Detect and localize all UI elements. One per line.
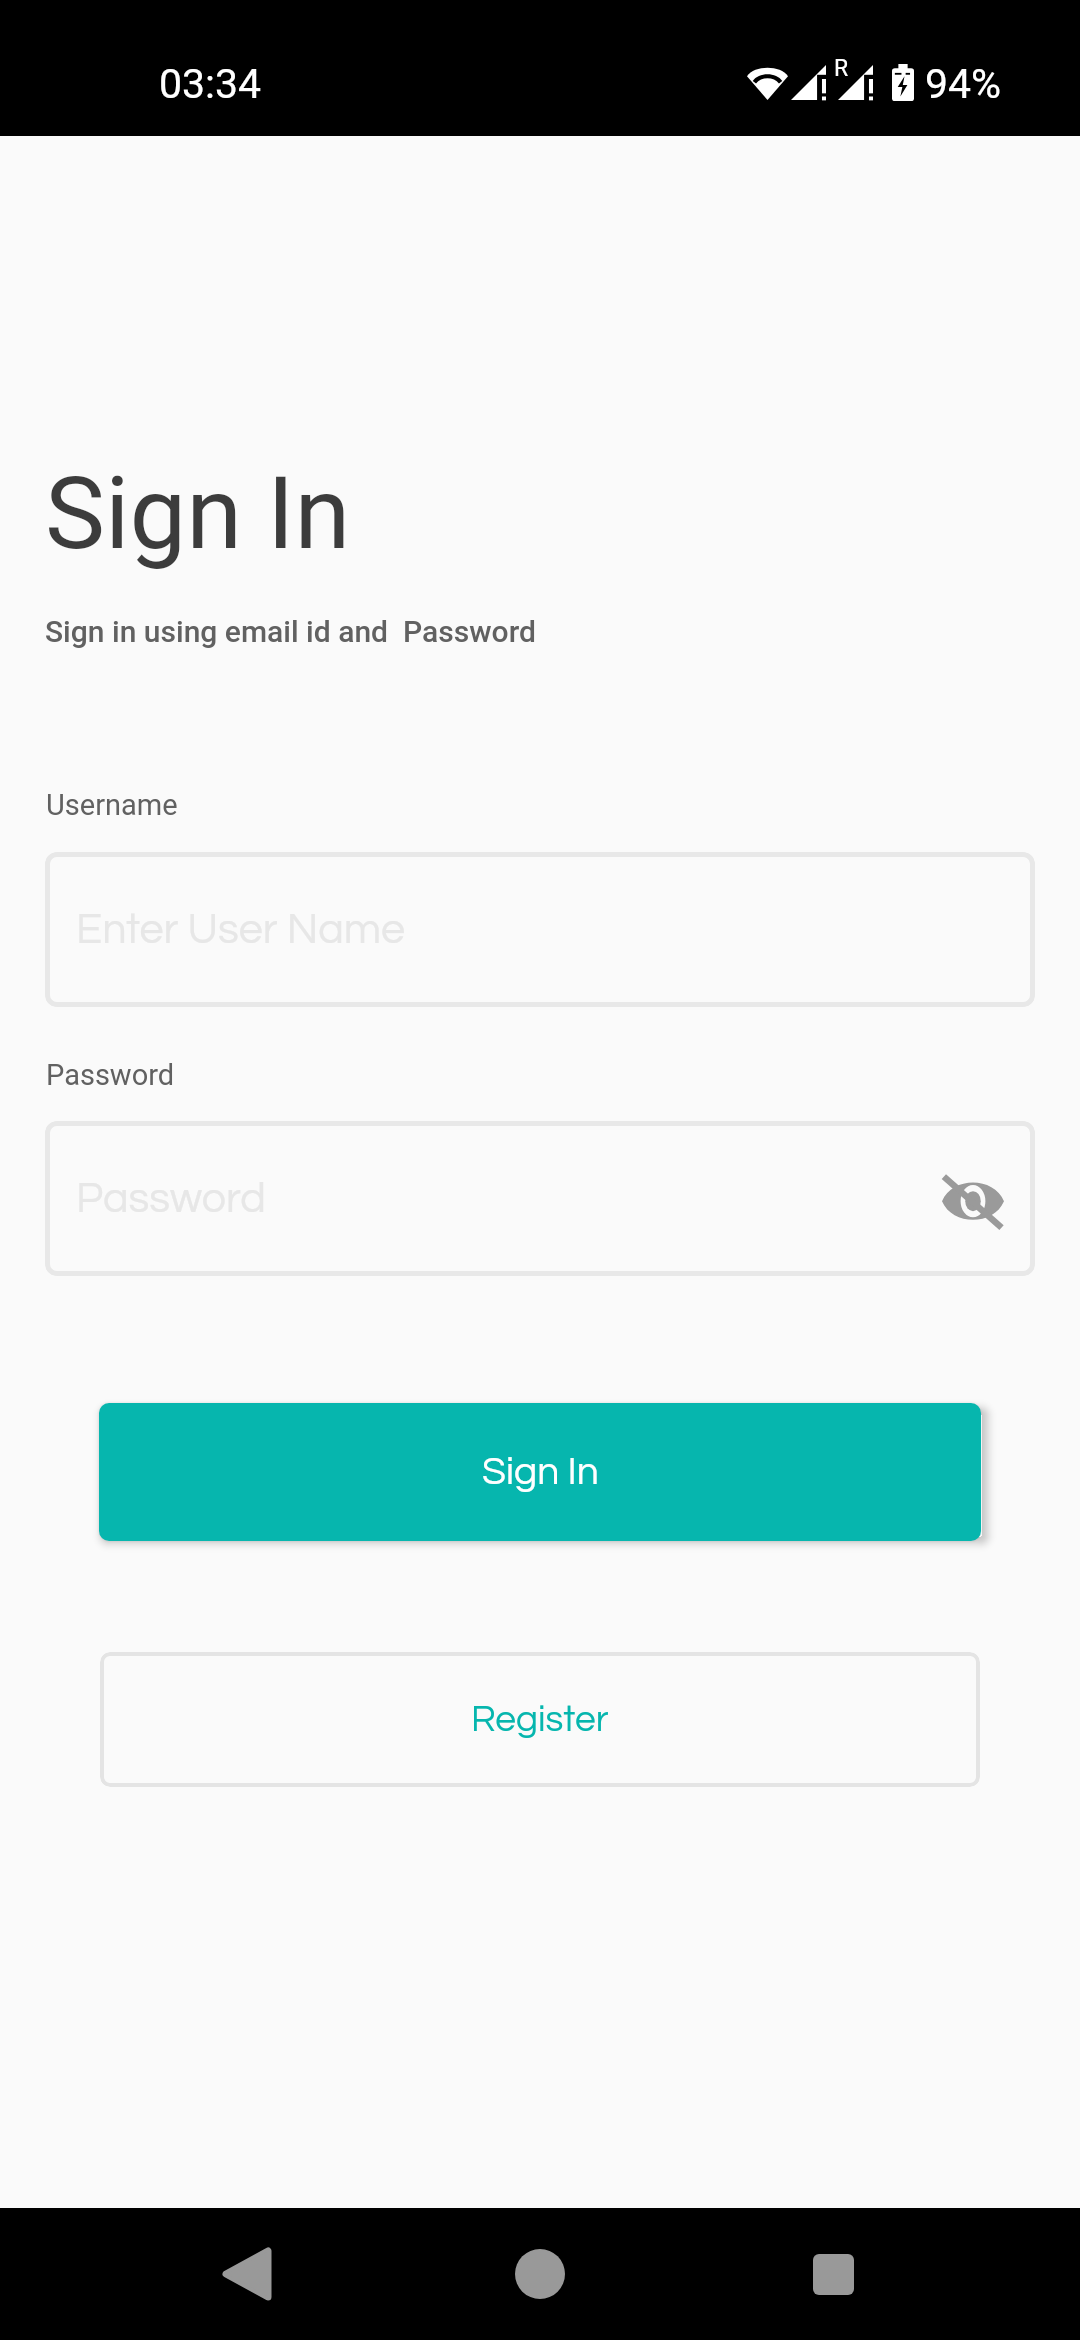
staticText: Password (76, 1177, 266, 1221)
button[interactable]: Show password (941, 1167, 1005, 1231)
staticText: 94% (925, 60, 1002, 108)
button[interactable]: Recent apps (773, 2214, 893, 2334)
staticText: Sign In (482, 1452, 599, 1492)
button[interactable]: Enter User Name (45, 852, 1035, 1007)
staticText: Register (471, 1701, 609, 1739)
button[interactable]: Home (480, 2214, 600, 2334)
button[interactable]: Register (100, 1652, 980, 1787)
button[interactable]: Password (45, 1121, 1035, 1276)
staticText: Password (46, 1058, 175, 1092)
staticText: Enter User Name (76, 908, 406, 952)
staticText: Sign In (45, 454, 351, 572)
staticText: R (834, 55, 849, 82)
staticText: Sign in using email id and Password (45, 614, 536, 649)
button[interactable]: Sign In (99, 1403, 981, 1541)
button[interactable]: Back (187, 2214, 307, 2334)
staticText: 03:34 (159, 60, 262, 108)
staticText: Username (46, 788, 178, 822)
